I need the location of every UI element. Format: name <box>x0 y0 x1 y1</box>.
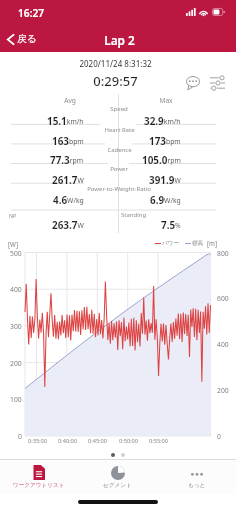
staticText: 400 <box>217 340 229 349</box>
staticText: セグメント <box>103 482 132 489</box>
staticText: 標高 <box>192 240 204 247</box>
staticText: 0:45:00 <box>88 437 107 445</box>
staticText: 163bpm <box>52 134 84 147</box>
staticText: 261.7W <box>52 173 84 186</box>
staticText: パワー <box>162 240 180 247</box>
button[interactable]: Comments <box>182 68 204 90</box>
staticText: 100 <box>10 395 22 404</box>
staticText: 77.3rpm <box>50 153 84 166</box>
staticText: ワークアウトリスト <box>13 482 65 489</box>
staticText: 戻る <box>17 33 37 45</box>
staticText: 16:27 <box>18 6 45 20</box>
staticText: Avg <box>64 96 76 105</box>
staticText: 0:55:00 <box>149 437 168 445</box>
staticText: 300 <box>10 322 22 331</box>
staticText: Max <box>159 96 173 105</box>
button[interactable]: セグメント <box>78 460 157 494</box>
staticText: もっと <box>188 482 206 489</box>
staticText: [W] <box>8 240 18 249</box>
staticText: 105.0rpm <box>142 153 181 166</box>
staticText: 173bpm <box>149 134 181 147</box>
staticText: 263.7W <box>52 218 84 231</box>
staticText: Heart Rate <box>104 126 135 134</box>
staticText: 0 <box>18 432 22 441</box>
staticText: Cadence <box>107 146 132 154</box>
staticText: 500 <box>10 249 22 258</box>
staticText: Speed <box>110 105 128 113</box>
staticText: 0 <box>217 432 221 441</box>
staticText: 0:35:00 <box>28 437 47 445</box>
staticText: 6.9W/kg <box>150 193 181 206</box>
staticText: 4.6W/kg <box>53 193 84 206</box>
staticText: 400 <box>10 285 22 294</box>
staticText: 0:50:00 <box>119 437 138 445</box>
staticText: 7.5% <box>161 218 181 231</box>
staticText: 2020/11/24 8:31:32 <box>79 58 152 69</box>
staticText: 200 <box>10 359 22 368</box>
staticText: [m] <box>207 239 218 248</box>
button[interactable]: Settings <box>206 68 228 90</box>
staticText: 15.1km/h <box>47 114 84 127</box>
staticText: 391.9W <box>149 173 181 186</box>
staticText: 600 <box>217 294 229 303</box>
staticText: 0:40:00 <box>58 437 77 445</box>
button[interactable]: ワークアウトリスト <box>0 460 78 494</box>
staticText: Power-to-Weight-Ratio <box>87 185 151 193</box>
button[interactable]: 戻る <box>3 31 41 47</box>
staticText: 800 <box>217 249 229 258</box>
staticText: Lap 2 <box>104 32 135 48</box>
staticText: NP <box>9 212 17 219</box>
staticText: 200 <box>217 386 229 395</box>
staticText: Power <box>110 165 128 173</box>
button[interactable]: もっと <box>157 460 236 494</box>
staticText: Standing <box>121 211 147 219</box>
staticText: 0:29:57 <box>93 72 138 90</box>
staticText: 32.9km/h <box>144 114 181 127</box>
